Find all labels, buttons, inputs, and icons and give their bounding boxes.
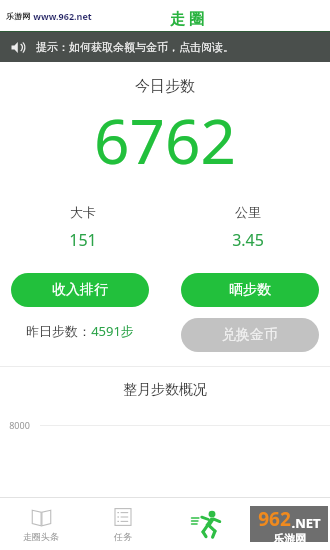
staticText: 任务: [114, 531, 132, 542]
staticText: 6762: [94, 98, 236, 182]
staticText: 乐游网: [6, 11, 30, 21]
staticText: 收入排行: [52, 281, 108, 299]
staticText: 大卡: [70, 204, 96, 220]
staticText: .NET: [291, 514, 321, 532]
staticText: 乐游网: [273, 532, 306, 542]
button[interactable]: 兑换金币: [181, 318, 319, 352]
staticText: 8000: [9, 419, 30, 431]
button[interactable]: 任务: [82, 498, 164, 550]
staticText: 走圈头条: [23, 531, 59, 542]
staticText: 走 圈: [170, 8, 204, 28]
other: 提示: [10, 40, 25, 55]
button[interactable]: 提示: [0, 32, 330, 62]
staticText: 晒步数: [229, 281, 271, 299]
staticText: 公里: [235, 204, 261, 220]
button[interactable]: 走圈: [164, 498, 247, 550]
staticText: 4591步: [91, 322, 134, 340]
staticText: 提示：如何获取余额与金币，点击阅读。: [36, 40, 234, 54]
staticText: 962: [258, 506, 291, 532]
staticText: www.962.net: [33, 10, 92, 22]
button[interactable]: 走圈头条: [0, 498, 82, 550]
staticText: 昨日步数：: [26, 323, 91, 339]
staticText: 151: [69, 229, 97, 251]
button[interactable]: 收入排行: [11, 273, 149, 307]
staticText: 整月步数概况: [123, 381, 207, 399]
staticText: 3.45: [232, 229, 264, 251]
staticText: 兑换金币: [222, 326, 278, 344]
button[interactable]: 晒步数: [181, 273, 319, 307]
staticText: 今日步数: [135, 77, 195, 96]
